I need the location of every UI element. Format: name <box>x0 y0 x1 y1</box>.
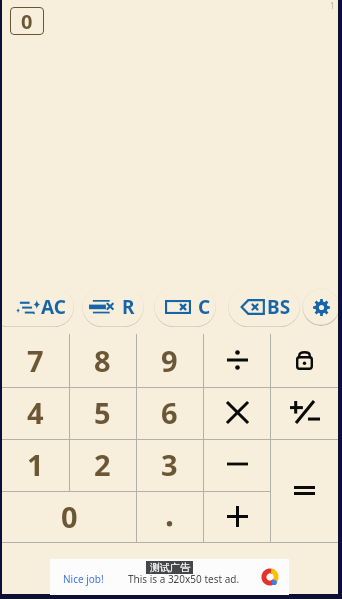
staticText: 5 <box>94 393 111 432</box>
button[interactable]: 6 <box>136 386 203 438</box>
button[interactable]: 7 <box>2 334 69 386</box>
button[interactable]: Multiply <box>204 386 271 438</box>
staticText: Nice job! <box>63 572 104 586</box>
staticText: 2 <box>94 445 111 484</box>
button[interactable]: 0 <box>10 7 44 35</box>
button[interactable]: Settings <box>302 288 340 326</box>
staticText: 8 <box>94 341 111 380</box>
staticText: 1 <box>27 445 44 484</box>
staticText: This is a 320x50 test ad. <box>128 572 240 586</box>
staticText: BS <box>267 294 291 320</box>
staticText: 4 <box>27 393 44 432</box>
button[interactable] <box>50 559 289 595</box>
staticText: 9 <box>161 341 178 380</box>
staticText: 6 <box>161 393 178 432</box>
button[interactable]: Equals <box>271 438 338 542</box>
button[interactable]: Lock <box>271 334 338 386</box>
button[interactable]: 4 <box>2 386 69 438</box>
staticText: 测试广告 <box>150 561 190 574</box>
button[interactable]: Plus minus <box>271 386 338 438</box>
button[interactable]: Plus <box>204 490 271 542</box>
staticText: 7 <box>27 341 44 380</box>
button[interactable]: 3 <box>136 438 203 490</box>
button[interactable]: 9 <box>136 334 203 386</box>
button[interactable] <box>136 490 203 542</box>
staticText: 1 <box>330 0 335 11</box>
button[interactable]: C <box>154 287 216 327</box>
button[interactable]: 0 <box>2 490 136 542</box>
staticText: 3 <box>161 445 178 484</box>
button[interactable]: Divide <box>204 334 271 386</box>
button[interactable]: Minus <box>204 438 271 490</box>
staticText: R <box>122 294 135 320</box>
button[interactable]: R <box>82 287 144 327</box>
button[interactable]: AC <box>0 287 74 327</box>
button[interactable]: 5 <box>69 386 136 438</box>
staticText: C <box>198 294 211 320</box>
button[interactable]: BS <box>228 287 300 327</box>
button[interactable]: 1 <box>2 438 69 490</box>
button[interactable]: 2 <box>69 438 136 490</box>
staticText: 0 <box>21 8 33 35</box>
staticText: 0 <box>61 497 78 536</box>
button[interactable]: 8 <box>69 334 136 386</box>
staticText: AC <box>41 294 66 320</box>
